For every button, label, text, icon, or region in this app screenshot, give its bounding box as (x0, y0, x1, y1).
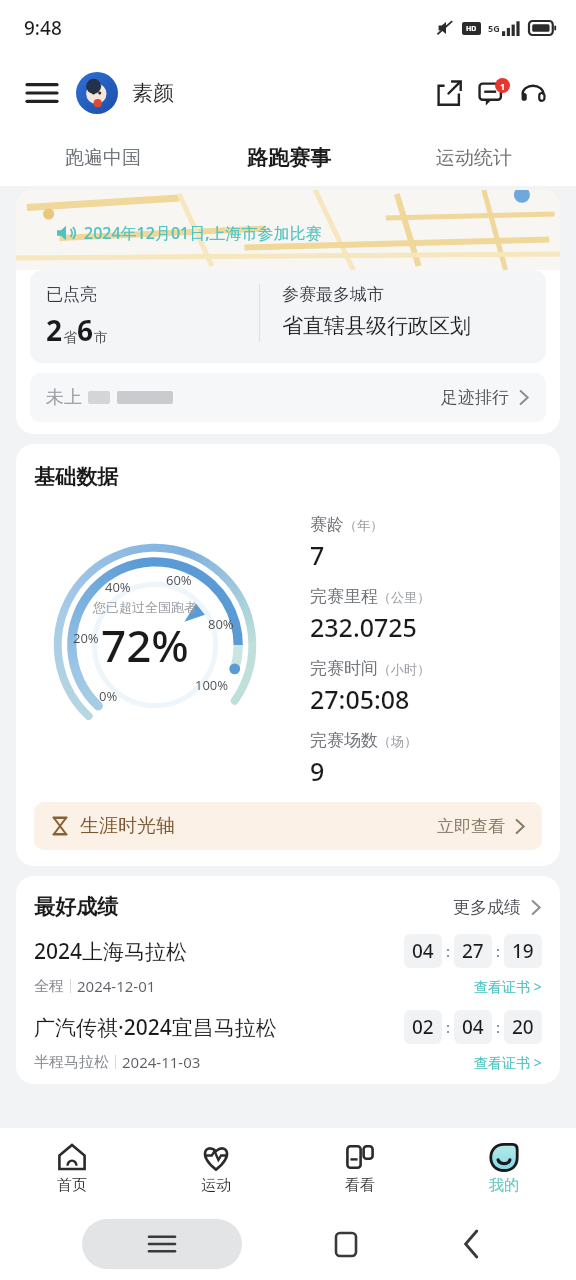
staticText: 2 (46, 311, 63, 349)
button[interactable]: 跑遍中国 (10, 130, 196, 186)
staticText: 看看 (345, 1176, 375, 1195)
staticText: 素颜 (132, 80, 174, 106)
staticText: 最好成绩 (34, 894, 118, 920)
button[interactable]: 生涯时光轴 (34, 802, 542, 850)
staticText: : (492, 1017, 504, 1037)
staticText: 27 (462, 938, 484, 964)
staticText: 0% (99, 687, 118, 705)
button[interactable]: 运动 (144, 1128, 288, 1208)
staticText: 完赛时间 (310, 658, 378, 679)
staticText: 您已超过全国跑者 (93, 599, 197, 615)
staticText: 基础数据 (34, 464, 118, 490)
staticText: （小时） (378, 661, 430, 677)
staticText: 27:05:08 (310, 682, 410, 716)
staticText: 04 (462, 1014, 484, 1040)
button[interactable]: 素颜 (76, 72, 174, 114)
staticText: 40% (105, 578, 131, 596)
staticText: 广汽传祺·2024宜昌马拉松 (34, 1013, 404, 1042)
staticText: （公里） (378, 589, 430, 605)
button[interactable]: Menu (22, 73, 62, 113)
staticText: 2024年12月01日,上海市参加比赛 (84, 222, 322, 244)
staticText: 市 (94, 329, 108, 347)
button[interactable]: Support (512, 72, 554, 114)
button[interactable]: 路跑赛事 (196, 130, 381, 186)
staticText: 7 (310, 538, 325, 572)
staticText: 20% (73, 629, 99, 647)
staticText: 半程马拉松 (34, 1053, 109, 1072)
staticText: 20 (512, 1014, 534, 1040)
button[interactable]: 看看 (288, 1128, 432, 1208)
staticText: （场） (378, 733, 417, 749)
staticText: 232.0725 (310, 610, 417, 644)
staticText: : (492, 941, 504, 961)
button[interactable]: 2024上海马拉松 (34, 934, 542, 996)
staticText: 未上 (46, 386, 82, 409)
staticText: 2024-11-03 (122, 1052, 201, 1072)
button[interactable]: 最好成绩 (34, 894, 542, 920)
staticText: 72% (101, 615, 189, 675)
staticText: 60% (166, 571, 192, 589)
staticText: 省直辖县级行政区划 (282, 313, 471, 339)
staticText: 04 (412, 938, 434, 964)
staticText: 100% (195, 676, 229, 694)
staticText: 查看证书 > (474, 1053, 542, 1072)
button[interactable]: Home (324, 1222, 368, 1266)
button[interactable]: 运动统计 (381, 130, 566, 186)
staticText: 完赛场数 (310, 730, 378, 751)
button[interactable]: Messages (470, 72, 512, 114)
button[interactable]: 未上 (30, 373, 546, 422)
staticText: : (442, 941, 454, 961)
staticText: 2024-12-01 (77, 976, 156, 996)
staticText: 足迹排行 (441, 387, 509, 408)
staticText: 全程 (34, 977, 64, 996)
staticText: 完赛里程 (310, 586, 378, 607)
staticText: HD (466, 24, 477, 34)
staticText: 更多成绩 (453, 897, 521, 918)
button[interactable]: 首页 (0, 1128, 144, 1208)
staticText: 立即查看 (437, 816, 505, 837)
staticText: 参赛最多城市 (282, 284, 384, 305)
staticText: 省 (63, 329, 77, 347)
staticText: 我的 (489, 1176, 519, 1195)
staticText: 19 (512, 938, 534, 964)
staticText: 首页 (57, 1176, 87, 1195)
staticText: 1 (500, 80, 506, 92)
staticText: : (442, 1017, 454, 1037)
staticText: 2024上海马拉松 (34, 937, 404, 966)
button[interactable]: 我的 (432, 1128, 576, 1208)
staticText: 80% (208, 615, 234, 633)
button[interactable]: Back (450, 1222, 494, 1266)
staticText: 已点亮 (46, 284, 97, 305)
staticText: 查看证书 > (474, 977, 542, 996)
staticText: （年） (344, 517, 383, 533)
button[interactable]: Recents (82, 1219, 242, 1269)
staticText: 9 (310, 754, 325, 788)
staticText: 运动 (201, 1176, 231, 1195)
staticText: 6 (77, 311, 94, 349)
staticText: 02 (412, 1014, 434, 1040)
staticText: 生涯时光轴 (80, 814, 175, 838)
staticText: 路跑赛事 (247, 145, 331, 171)
staticText: 5G (488, 22, 500, 34)
staticText: 赛龄 (310, 514, 344, 535)
button[interactable]: 广汽传祺·2024宜昌马拉松 (34, 1010, 542, 1072)
staticText: 运动统计 (436, 146, 512, 170)
staticText: 跑遍中国 (65, 146, 141, 170)
button[interactable]: Share (428, 72, 470, 114)
staticText: 9:48 (24, 15, 62, 41)
